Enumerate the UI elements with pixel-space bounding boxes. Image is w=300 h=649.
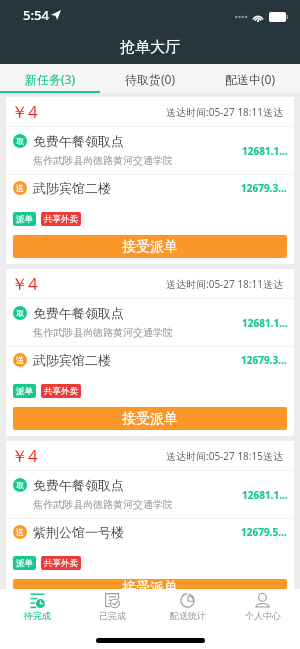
staticText: 配送统计 bbox=[170, 610, 206, 621]
staticText: 个人中心 bbox=[245, 610, 281, 621]
staticText: 5:54 bbox=[23, 6, 49, 24]
staticText: 取 bbox=[16, 136, 24, 146]
staticText: 接受派单 bbox=[122, 579, 178, 589]
staticText: 共享外卖 bbox=[44, 214, 78, 225]
staticText: 焦作武陟县尚德路黄河交通学院 bbox=[33, 326, 173, 339]
staticText: 送 bbox=[16, 183, 24, 193]
staticText: 武陟宾馆二楼 bbox=[33, 352, 111, 368]
staticText: 取 bbox=[16, 308, 24, 318]
button[interactable]: 接受派单 bbox=[13, 235, 287, 258]
staticText: 送达时间:05-27 18:15送达 bbox=[166, 449, 283, 463]
staticText: 送达时间:05-27 18:11送达 bbox=[166, 105, 283, 119]
staticText: ￥4 bbox=[11, 272, 38, 295]
staticText: 抢单大厅 bbox=[120, 38, 180, 57]
staticText: 派单 bbox=[16, 214, 33, 225]
staticText: 共享外卖 bbox=[44, 386, 78, 397]
staticText: 送 bbox=[16, 527, 24, 537]
staticText: 待取货(0) bbox=[125, 71, 176, 87]
staticText: 配送中(0) bbox=[225, 71, 276, 87]
staticText: 12679.3… bbox=[241, 353, 287, 367]
button[interactable]: 配送中(0) bbox=[200, 64, 300, 93]
staticText: 12679.3… bbox=[241, 181, 287, 195]
staticText: 免费午餐领取点 bbox=[33, 477, 124, 493]
button[interactable]: 接受派单 bbox=[13, 579, 287, 589]
staticText: 焦作武陟县尚德路黄河交通学院 bbox=[33, 154, 173, 167]
staticText: 12679.5… bbox=[241, 525, 287, 539]
staticText: 武陟宾馆二楼 bbox=[33, 180, 111, 196]
staticText: 送达时间:05-27 18:11送达 bbox=[166, 277, 283, 291]
staticText: 免费午餐领取点 bbox=[33, 305, 124, 321]
button[interactable]: 待完成 bbox=[0, 593, 75, 625]
staticText: 派单 bbox=[16, 558, 33, 569]
staticText: 已完成 bbox=[99, 610, 126, 621]
staticText: 接受派单 bbox=[122, 410, 178, 428]
staticText: ￥4 bbox=[11, 100, 38, 123]
button[interactable]: 个人中心 bbox=[225, 593, 300, 625]
button[interactable]: 待取货(0) bbox=[100, 64, 200, 93]
staticText: 取 bbox=[16, 480, 24, 490]
staticText: 焦作武陟县尚德路黄河交通学院 bbox=[33, 498, 173, 511]
staticText: 12681.1… bbox=[242, 488, 288, 502]
button[interactable]: 已完成 bbox=[75, 593, 150, 625]
staticText: 待完成 bbox=[24, 610, 51, 621]
staticText: 共享外卖 bbox=[44, 558, 78, 569]
staticText: 派单 bbox=[16, 386, 33, 397]
button[interactable]: 新任务(3) bbox=[0, 64, 100, 93]
button[interactable]: 接受派单 bbox=[13, 407, 287, 430]
staticText: 紫荆公馆一号楼 bbox=[33, 524, 124, 540]
staticText: 12681.1… bbox=[242, 144, 288, 158]
staticText: 送 bbox=[16, 355, 24, 365]
staticText: ￥4 bbox=[11, 444, 38, 467]
staticText: 接受派单 bbox=[122, 238, 178, 256]
staticText: 12681.1… bbox=[242, 316, 288, 330]
staticText: 新任务(3) bbox=[25, 71, 76, 87]
button[interactable]: 配送统计 bbox=[150, 593, 225, 625]
staticText: 免费午餐领取点 bbox=[33, 133, 124, 149]
